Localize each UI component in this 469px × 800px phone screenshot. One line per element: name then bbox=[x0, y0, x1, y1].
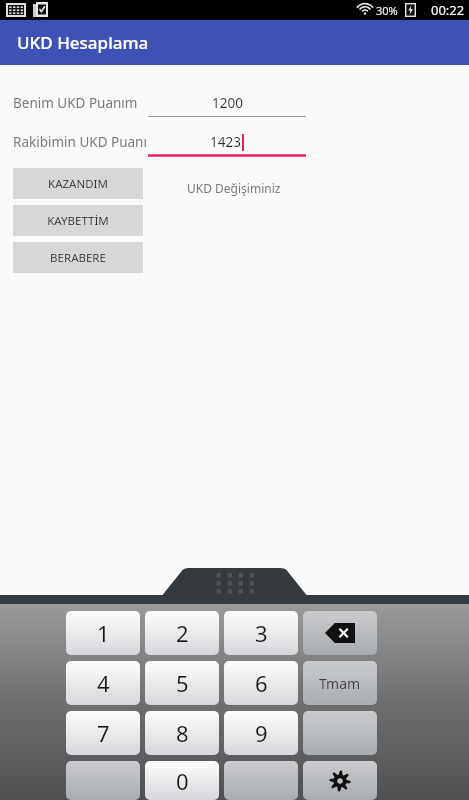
staticText: 7 bbox=[97, 718, 110, 748]
staticText: UKD Hesaplama bbox=[17, 31, 149, 54]
button[interactable]: 3 bbox=[224, 611, 298, 655]
staticText: 2 bbox=[176, 618, 189, 648]
staticText: 6 bbox=[255, 668, 268, 698]
button[interactable]: BERABERE bbox=[13, 242, 143, 273]
staticText: 3 bbox=[255, 618, 268, 648]
button[interactable]: 5 bbox=[145, 661, 219, 705]
staticText: 00:22 bbox=[431, 1, 465, 19]
button[interactable]: 6 bbox=[224, 661, 298, 705]
staticText: Rakibimin UKD Puanı bbox=[13, 133, 147, 151]
button[interactable]: KAYBETTİM bbox=[13, 205, 143, 236]
button[interactable]: Blank key bbox=[66, 761, 140, 800]
button[interactable]: 8 bbox=[145, 711, 219, 755]
button[interactable]: Blank key bbox=[224, 761, 298, 800]
staticText: 4 bbox=[97, 668, 110, 698]
staticText: BERABERE bbox=[50, 250, 106, 266]
button[interactable]: 1 bbox=[66, 611, 140, 655]
button[interactable]: Blank key bbox=[303, 711, 377, 755]
button[interactable]: 7 bbox=[66, 711, 140, 755]
staticText: 30% bbox=[376, 3, 398, 18]
button[interactable]: 1423 bbox=[148, 127, 306, 157]
staticText: 5 bbox=[176, 668, 189, 698]
button[interactable]: 2 bbox=[145, 611, 219, 655]
button[interactable]: Settings bbox=[303, 761, 377, 800]
staticText: 1 bbox=[97, 618, 110, 648]
button[interactable]: 9 bbox=[224, 711, 298, 755]
button[interactable]: Keyboard handle bbox=[0, 567, 469, 595]
button[interactable]: Tmam bbox=[303, 661, 377, 705]
staticText: 0 bbox=[176, 766, 189, 796]
staticText: Benim UKD Puanım bbox=[13, 94, 138, 112]
button[interactable]: 4 bbox=[66, 661, 140, 705]
staticText: 1200 bbox=[212, 94, 243, 112]
staticText: KAYBETTİM bbox=[47, 213, 109, 229]
button[interactable]: Delete bbox=[303, 611, 377, 655]
button[interactable]: KAZANDIM bbox=[13, 168, 143, 199]
staticText: 9 bbox=[255, 718, 268, 748]
button[interactable]: 1200 bbox=[148, 88, 306, 118]
staticText: KAZANDIM bbox=[48, 176, 108, 192]
staticText: 1423 bbox=[210, 133, 241, 151]
staticText: UKD Değişiminiz bbox=[187, 180, 281, 196]
staticText: Tmam bbox=[319, 674, 361, 693]
staticText: 8 bbox=[176, 718, 189, 748]
button[interactable]: 0 bbox=[145, 761, 219, 800]
